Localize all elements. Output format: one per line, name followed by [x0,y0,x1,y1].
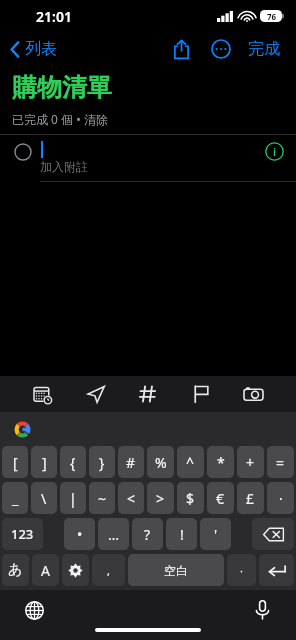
staticText: · [279,489,283,508]
button[interactable]: … [98,518,129,550]
button[interactable]: · [267,482,294,514]
button[interactable]: ' [200,518,231,550]
button[interactable]: £ [237,482,264,514]
staticText: } [99,453,105,472]
staticText: { [70,453,76,472]
button[interactable]: Add location [79,377,113,411]
button[interactable]: Add flag [184,377,218,411]
button[interactable]: $ [177,482,204,514]
button[interactable]: A [32,554,59,586]
staticText: ^ [186,453,195,472]
button[interactable]: + [237,446,264,478]
staticText: 加入附註 [40,159,88,174]
button[interactable]: # [118,446,144,478]
button[interactable]: 空白 [128,554,224,586]
button[interactable]: ! [166,518,197,550]
staticText: 購物清單 [12,72,112,103]
staticText: あ [8,561,23,579]
button[interactable]: > [147,482,174,514]
staticText: | [69,489,77,508]
button[interactable]: , [92,554,125,586]
button[interactable]: = [267,446,294,478]
button[interactable]: • [64,518,95,550]
button[interactable]: ~ [89,482,115,514]
button[interactable]: [ [2,446,28,478]
button[interactable]: · [227,554,256,586]
staticText: * [217,453,225,472]
staticText: 列表 [25,39,57,59]
staticText: _ [12,489,19,508]
staticText: • [77,525,83,544]
button[interactable]: あ [2,554,29,586]
staticText: ! [180,525,184,544]
button[interactable]: { [60,446,86,478]
button[interactable]: Voice input [250,598,274,622]
button[interactable]: Add photo [236,377,270,411]
staticText: + [246,453,255,472]
staticText: ' [214,525,218,544]
button[interactable]: Share [164,32,198,66]
staticText: £ [246,489,255,508]
staticText: > [156,489,165,508]
staticText: $ [186,489,195,508]
button[interactable]: Details [265,142,284,161]
staticText: 清除 [84,112,108,127]
button[interactable]: Enter [259,554,294,586]
button[interactable]: Mark complete [14,143,32,161]
button[interactable]: ? [132,518,163,550]
button[interactable]: ^ [177,446,204,478]
button[interactable]: \ [31,482,57,514]
button[interactable]: 清除 [84,112,108,127]
staticText: 已完成 0 個 • [12,111,84,127]
staticText: \ [41,489,47,508]
staticText: # [126,453,136,472]
staticText: ? [144,525,151,544]
button[interactable]: Change keyboard language [22,598,46,622]
button[interactable]: < [118,482,144,514]
staticText: A [41,561,50,580]
button[interactable]: Google [12,419,33,440]
button[interactable]: € [207,482,234,514]
staticText: … [108,525,120,544]
staticText: ~ [98,489,107,508]
button[interactable]: * [207,446,234,478]
button[interactable]: | [60,482,86,514]
staticText: = [276,453,285,472]
button[interactable]: 完成 [242,33,286,65]
staticText: 空白 [164,563,188,578]
staticText: 76 [267,11,277,22]
button[interactable]: Backspace [252,518,294,550]
button[interactable]: } [89,446,115,478]
staticText: % [155,453,167,472]
staticText: , [107,563,110,578]
button[interactable]: Add tag [131,377,165,411]
staticText: [ [13,453,18,472]
button[interactable]: % [147,446,174,478]
staticText: ] [42,453,47,472]
button[interactable]: 123 [2,518,43,550]
button[interactable]: Add date [26,377,60,411]
staticText: 123 [11,525,34,543]
button[interactable]: _ [2,482,28,514]
staticText: · [240,563,243,578]
staticText: 完成 [248,39,280,59]
button[interactable]: More options [204,32,238,66]
staticText: 21:01 [36,7,72,26]
staticText: < [127,489,136,508]
button[interactable]: ] [31,446,57,478]
staticText: i [273,144,276,159]
staticText: € [216,489,225,508]
button[interactable]: 列表 [8,35,59,63]
button[interactable]: Settings [62,554,89,586]
